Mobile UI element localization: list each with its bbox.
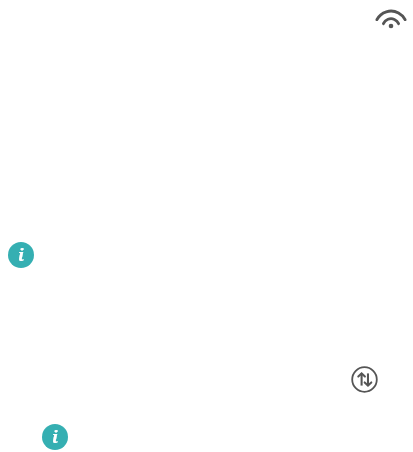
staticText: i — [52, 425, 59, 448]
button[interactable]: Information — [42, 424, 68, 450]
button[interactable]: Information — [8, 242, 34, 268]
staticText: i — [18, 243, 25, 266]
button[interactable]: Data transfer — [350, 365, 379, 394]
button[interactable]: Wi-Fi — [374, 3, 408, 31]
